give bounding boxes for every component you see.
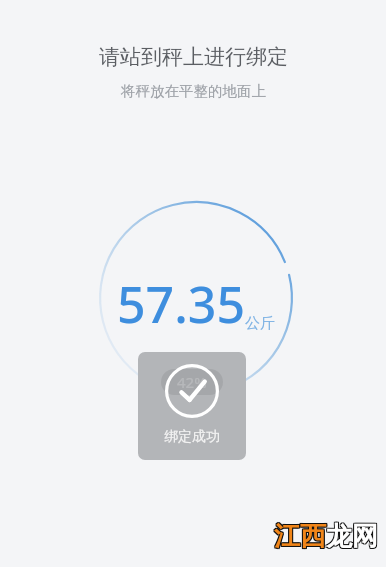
staticText: 请站到秤上进行绑定 — [99, 44, 288, 70]
staticText: 龙 — [326, 521, 352, 554]
staticText: 龙 — [326, 520, 352, 553]
staticText: 龙 — [327, 520, 353, 553]
staticText: 网 — [352, 519, 378, 552]
staticText: 江 — [273, 521, 299, 554]
staticText: 龙 — [327, 519, 353, 552]
staticText: 江 — [273, 520, 299, 553]
staticText: 网 — [351, 520, 377, 553]
staticText: 42% — [177, 372, 207, 392]
staticText: 公斤 — [245, 314, 275, 333]
staticText: 江 — [274, 520, 300, 553]
staticText: 绑定成功 — [164, 428, 220, 446]
staticText: 龙 — [327, 521, 353, 554]
staticText: 网 — [353, 519, 379, 552]
staticText: 龙 — [325, 521, 351, 554]
staticText: 西 — [299, 519, 325, 552]
staticText: 江 — [275, 519, 301, 552]
staticText: 西 — [301, 521, 327, 554]
staticText: 将秤放在平整的地面上 — [121, 82, 266, 100]
staticText: 江 — [273, 519, 299, 552]
staticText: 西 — [301, 520, 327, 553]
staticText: 龙 — [326, 519, 352, 552]
staticText: 江 — [274, 521, 300, 554]
staticText: 网 — [352, 520, 378, 553]
staticText: 网 — [353, 520, 379, 553]
staticText: 西 — [299, 520, 325, 553]
staticText: 龙 — [325, 520, 351, 553]
staticText: 网 — [351, 519, 377, 552]
staticText: 西 — [300, 519, 326, 552]
staticText: 网 — [352, 521, 378, 554]
staticText: 西 — [299, 521, 325, 554]
staticText: 江 — [275, 520, 301, 553]
staticText: 龙 — [325, 519, 351, 552]
staticText: 57.35 — [117, 270, 245, 338]
staticText: 江 — [275, 521, 301, 554]
button[interactable]: 绑定成功 — [138, 352, 246, 460]
staticText: 江 — [274, 519, 300, 552]
staticText: 西 — [300, 521, 326, 554]
staticText: 西 — [301, 519, 327, 552]
staticText: 西 — [300, 520, 326, 553]
staticText: 网 — [351, 521, 377, 554]
staticText: 网 — [353, 521, 379, 554]
